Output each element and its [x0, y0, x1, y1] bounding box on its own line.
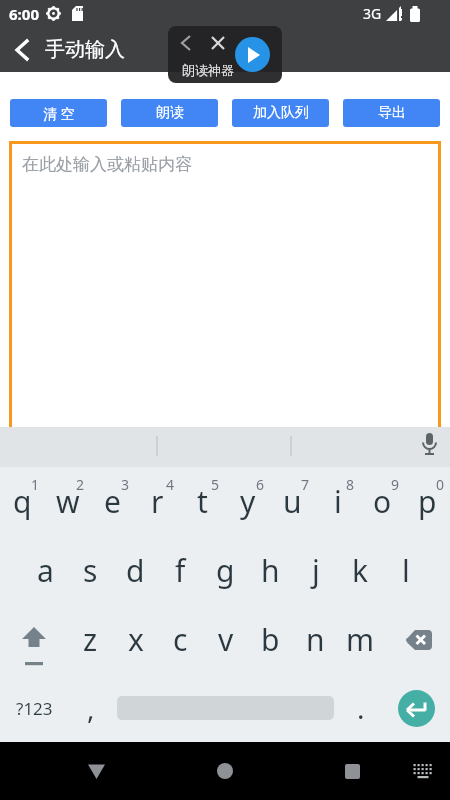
button[interactable]: r: [135, 467, 180, 536]
button[interactable]: 导出: [343, 99, 440, 127]
staticText: 6:00: [9, 4, 39, 24]
staticText: 3: [121, 475, 130, 494]
button[interactable]: 朗读神器: [168, 26, 282, 83]
staticText: i: [334, 481, 342, 522]
staticText: 4: [166, 475, 175, 494]
staticText: c: [173, 619, 188, 660]
button[interactable]: [80, 755, 112, 787]
button[interactable]: z: [68, 605, 113, 674]
staticText: 手动输入: [45, 37, 125, 62]
button[interactable]: p: [405, 467, 450, 536]
staticText: q: [13, 481, 32, 522]
staticText: r: [151, 481, 164, 522]
staticText: 0: [436, 475, 445, 494]
staticText: h: [261, 550, 280, 591]
staticText: 3G: [363, 4, 382, 23]
button[interactable]: n: [293, 605, 338, 674]
button[interactable]: [235, 37, 270, 72]
button[interactable]: g: [203, 536, 248, 605]
button[interactable]: [398, 690, 435, 727]
staticText: a: [37, 550, 54, 591]
button[interactable]: [383, 605, 450, 674]
button[interactable]: b: [248, 605, 293, 674]
button[interactable]: 朗读: [121, 99, 218, 127]
button[interactable]: q: [0, 467, 45, 536]
staticText: b: [261, 619, 280, 660]
button[interactable]: m: [338, 605, 383, 674]
staticText: 6: [256, 475, 265, 494]
staticText: j: [312, 550, 320, 591]
staticText: n: [306, 619, 325, 660]
staticText: w: [56, 481, 80, 522]
button[interactable]: [0, 605, 68, 674]
staticText: m: [346, 619, 375, 660]
staticText: 2: [76, 475, 85, 494]
staticText: 朗读神器: [182, 62, 234, 78]
staticText: 8: [346, 475, 355, 494]
staticText: 朗读: [156, 104, 184, 122]
button[interactable]: [408, 756, 438, 786]
staticText: t: [197, 481, 208, 522]
staticText: d: [126, 550, 145, 591]
button[interactable]: s: [68, 536, 113, 605]
staticText: u: [283, 481, 302, 522]
staticText: ,: [87, 689, 95, 727]
staticText: 5: [211, 475, 220, 494]
staticText: f: [175, 550, 186, 591]
staticText: 在此处输入或粘贴内容: [22, 154, 192, 175]
button[interactable]: y: [225, 467, 270, 536]
button[interactable]: e: [90, 467, 135, 536]
staticText: 加入队列: [253, 104, 309, 122]
button[interactable]: [209, 755, 241, 787]
button[interactable]: 清 空: [10, 99, 107, 127]
staticText: k: [352, 550, 369, 591]
button[interactable]: u: [270, 467, 315, 536]
button[interactable]: 在此处输入或粘贴内容: [9, 141, 441, 427]
button[interactable]: [336, 755, 368, 787]
button[interactable]: j: [293, 536, 338, 605]
staticText: 7: [301, 475, 310, 494]
staticText: l: [402, 550, 410, 591]
button[interactable]: w: [45, 467, 90, 536]
button[interactable]: [14, 40, 32, 60]
button[interactable]: l: [383, 536, 428, 605]
button[interactable]: t: [180, 467, 225, 536]
button[interactable]: f: [158, 536, 203, 605]
staticText: ?123: [16, 697, 53, 720]
staticText: z: [83, 619, 98, 660]
button[interactable]: v: [203, 605, 248, 674]
button[interactable]: o: [360, 467, 405, 536]
button[interactable]: [422, 433, 437, 458]
button[interactable]: 加入队列: [232, 99, 329, 127]
staticText: o: [373, 481, 392, 522]
button[interactable]: a: [23, 536, 68, 605]
button[interactable]: ,: [68, 674, 113, 742]
staticText: 导出: [378, 104, 406, 122]
staticText: 9: [391, 475, 400, 494]
button[interactable]: d: [113, 536, 158, 605]
staticText: x: [128, 619, 144, 660]
staticText: g: [216, 550, 235, 591]
button[interactable]: h: [248, 536, 293, 605]
staticText: y: [240, 481, 256, 522]
button[interactable]: [113, 674, 338, 742]
button[interactable]: .: [338, 674, 383, 742]
button[interactable]: x: [113, 605, 158, 674]
staticText: v: [218, 619, 234, 660]
staticText: 1: [31, 475, 40, 494]
staticText: 清 空: [43, 104, 75, 123]
button[interactable]: ?123: [0, 674, 68, 742]
staticText: s: [83, 550, 98, 591]
staticText: p: [418, 481, 437, 522]
button[interactable]: c: [158, 605, 203, 674]
staticText: e: [104, 481, 121, 522]
button[interactable]: k: [338, 536, 383, 605]
button[interactable]: i: [315, 467, 360, 536]
button[interactable]: [383, 674, 450, 742]
staticText: .: [357, 689, 365, 727]
